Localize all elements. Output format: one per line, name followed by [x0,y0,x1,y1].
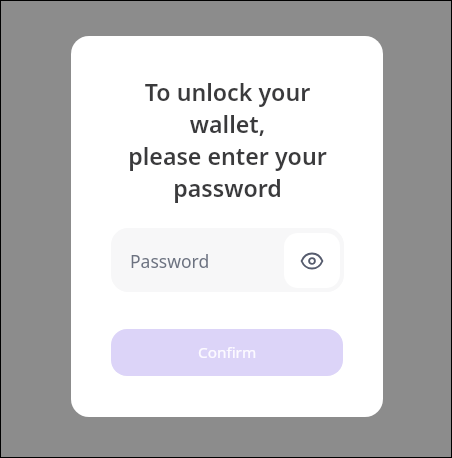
staticText: Password [130,249,210,273]
staticText: Confirm [198,342,257,363]
button[interactable]: Password [111,228,344,292]
button[interactable]: Show password [284,233,340,288]
staticText: To unlock your wallet, please enter your… [120,76,335,204]
button[interactable]: Confirm [111,329,343,376]
